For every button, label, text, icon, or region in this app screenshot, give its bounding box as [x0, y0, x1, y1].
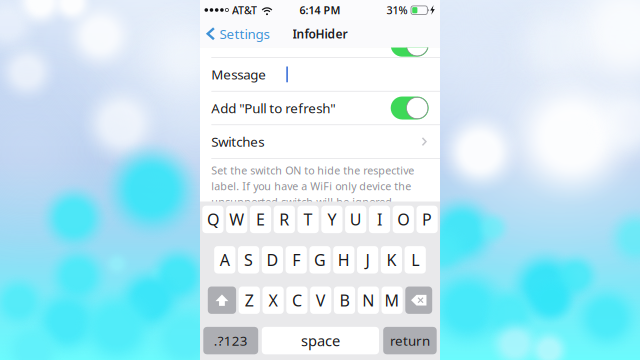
- button[interactable]: P: [416, 206, 438, 233]
- staticText: Switches: [211, 133, 264, 150]
- staticText: Set the switch ON to hide the respective: [211, 163, 414, 177]
- staticText: 6:14 PM: [299, 3, 340, 17]
- button[interactable]: L: [405, 246, 426, 273]
- staticText: R: [279, 209, 289, 230]
- staticText: J: [366, 249, 370, 270]
- button[interactable]: G: [309, 246, 331, 273]
- button[interactable]: Q: [202, 206, 223, 233]
- staticText: Message: [211, 65, 266, 83]
- staticText: 31%: [387, 3, 408, 17]
- staticText: G: [314, 249, 326, 270]
- staticText: Add "Pull to refresh": [211, 99, 335, 117]
- button[interactable]: S: [238, 246, 259, 273]
- button[interactable]: H: [333, 246, 354, 273]
- button[interactable]: Z: [239, 286, 260, 314]
- staticText: L: [411, 249, 419, 270]
- button[interactable]: D: [262, 246, 283, 273]
- staticText: InfoHider: [292, 26, 347, 42]
- staticText: Settings: [220, 25, 270, 43]
- button[interactable]: M: [381, 286, 403, 314]
- staticText: X: [269, 290, 278, 311]
- staticText: B: [339, 290, 349, 311]
- button[interactable]: N: [358, 286, 379, 314]
- staticText: N: [362, 290, 374, 311]
- staticText: Q: [207, 209, 219, 230]
- button[interactable]: I: [369, 206, 390, 233]
- button[interactable]: U: [345, 206, 366, 233]
- button[interactable]: O: [393, 206, 414, 233]
- staticText: D: [266, 249, 278, 270]
- staticText: H: [338, 249, 350, 270]
- staticText: label. If you have a WiFi only device th…: [211, 179, 411, 193]
- button[interactable]: space: [262, 327, 379, 354]
- button[interactable]: T: [297, 206, 319, 233]
- staticText: AT&T: [232, 3, 257, 17]
- staticText: F: [292, 249, 300, 270]
- button[interactable]: F: [286, 246, 307, 273]
- button[interactable]: K: [381, 246, 402, 273]
- staticText: space: [301, 331, 340, 350]
- button[interactable]: return: [383, 327, 437, 354]
- staticText: O: [397, 209, 409, 230]
- staticText: W: [229, 209, 244, 230]
- staticText: U: [350, 209, 362, 230]
- staticText: E: [256, 209, 265, 230]
- button[interactable]: C: [286, 286, 307, 314]
- staticText: V: [316, 290, 326, 311]
- staticText: I: [377, 209, 382, 230]
- staticText: .?123: [214, 332, 248, 349]
- button[interactable]: Shift: [208, 286, 236, 314]
- staticText: C: [292, 290, 302, 311]
- button[interactable]: E: [250, 206, 271, 233]
- button[interactable]: Y: [321, 206, 342, 233]
- button[interactable]: Switches: [200, 125, 440, 158]
- button[interactable]: .?123: [203, 327, 258, 354]
- staticText: P: [422, 209, 432, 230]
- staticText: S: [244, 249, 253, 270]
- button[interactable]: R: [274, 206, 295, 233]
- staticText: Y: [327, 209, 336, 230]
- staticText: Z: [245, 290, 254, 311]
- staticText: unsupported switch will be ignored.: [211, 195, 395, 209]
- button[interactable]: Settings: [200, 20, 278, 47]
- button[interactable]: V: [310, 286, 331, 314]
- button[interactable]: X: [262, 286, 284, 314]
- staticText: A: [220, 249, 230, 270]
- button[interactable]: B: [334, 286, 355, 314]
- button[interactable]: A: [214, 246, 235, 273]
- staticText: T: [304, 209, 313, 230]
- button[interactable]: J: [357, 246, 378, 273]
- button[interactable]: W: [226, 206, 247, 233]
- staticText: M: [385, 290, 400, 311]
- button[interactable]: Delete: [405, 286, 432, 314]
- staticText: return: [390, 332, 430, 349]
- button[interactable]: Message: [200, 58, 440, 91]
- staticText: K: [386, 249, 396, 270]
